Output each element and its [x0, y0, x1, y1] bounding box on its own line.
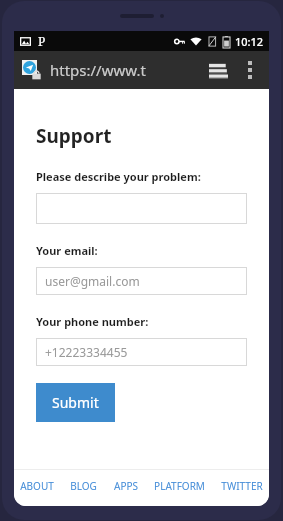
staticText: Submit — [52, 393, 99, 412]
button[interactable]: TWITTER — [219, 475, 265, 497]
staticText: P — [38, 33, 46, 49]
staticText: Support — [36, 123, 112, 149]
button[interactable]: APPS — [112, 475, 140, 497]
staticText: Your email: — [36, 243, 98, 258]
staticText: PLATFORM — [154, 479, 205, 493]
staticText: BLOG — [70, 479, 97, 493]
button[interactable]: ABOUT — [18, 475, 56, 497]
staticText: APPS — [114, 479, 138, 493]
staticText: +12223334455 — [45, 344, 128, 360]
button[interactable]: Submit — [36, 383, 115, 422]
staticText: ABOUT — [20, 479, 54, 493]
staticText: user@gmail.com — [45, 273, 140, 289]
button[interactable]: PLATFORM — [152, 475, 207, 497]
button[interactable]: More options — [235, 55, 265, 85]
staticText: Your phone number: — [36, 314, 149, 329]
staticText: https://www.t — [50, 60, 201, 80]
button[interactable]: BLOG — [68, 475, 99, 497]
staticText: Please describe your problem: — [36, 169, 201, 184]
button[interactable]: Tabs — [201, 53, 235, 87]
button[interactable]: user@gmail.com — [36, 267, 247, 295]
staticText: 10:12 — [235, 34, 264, 49]
button[interactable]: +12223334455 — [36, 338, 247, 366]
staticText: TWITTER — [221, 479, 263, 493]
button[interactable] — [36, 193, 247, 224]
